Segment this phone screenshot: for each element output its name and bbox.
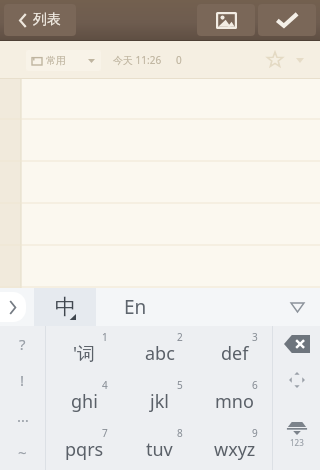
button[interactable]: 6 <box>197 374 272 422</box>
staticText: wxyz <box>214 437 256 462</box>
staticText: 今天 11:26 <box>113 53 162 67</box>
staticText: 7 <box>102 426 108 440</box>
button[interactable]: 2 <box>122 326 197 374</box>
staticText: tuv <box>146 437 173 462</box>
staticText: 列表 <box>33 11 61 29</box>
button[interactable]: 5 <box>122 374 197 422</box>
button[interactable]: ~ <box>0 434 45 470</box>
button[interactable]: 常用 <box>26 50 101 71</box>
button[interactable]: Insert image <box>197 4 255 36</box>
button[interactable]: … <box>0 398 45 434</box>
staticText: '词 <box>73 341 96 366</box>
staticText: 1 <box>102 330 108 344</box>
staticText: 2 <box>177 330 183 344</box>
staticText: pqrs <box>65 437 104 462</box>
button[interactable]: Hide candidates <box>282 292 312 322</box>
button[interactable]: More options <box>290 50 310 70</box>
button[interactable]: Done <box>258 4 316 36</box>
staticText: 123 <box>290 437 304 448</box>
button[interactable]: 1 <box>46 326 122 374</box>
staticText: 3 <box>252 330 258 344</box>
staticText: 常用 <box>46 54 66 67</box>
button[interactable]: En <box>96 288 282 326</box>
staticText: 中 <box>55 294 76 320</box>
staticText: ~ <box>18 442 27 462</box>
button[interactable]: 4 <box>46 374 122 422</box>
staticText: 5 <box>177 378 183 392</box>
staticText: ? <box>19 334 26 354</box>
button[interactable]: Hide keyboard <box>273 398 320 470</box>
button[interactable]: Backspace <box>273 326 320 362</box>
staticText: 8 <box>177 426 183 440</box>
staticText: ! <box>20 370 25 390</box>
staticText: ghi <box>71 389 98 414</box>
staticText: jkl <box>150 389 169 414</box>
staticText: En <box>124 294 147 320</box>
button[interactable]: Favorite <box>262 47 288 73</box>
button[interactable]: Move cursor <box>273 362 320 398</box>
button[interactable]: 中 <box>34 288 96 326</box>
staticText: mno <box>215 389 254 414</box>
button[interactable]: 列表 <box>4 4 76 36</box>
staticText: … <box>17 406 29 426</box>
staticText: def <box>221 341 249 366</box>
button[interactable]: Expand <box>0 292 26 322</box>
button[interactable]: 9 <box>197 422 272 470</box>
button[interactable]: 3 <box>197 326 272 374</box>
button[interactable]: 8 <box>122 422 197 470</box>
button[interactable]: ? <box>0 326 45 362</box>
staticText: abc <box>145 341 175 366</box>
button[interactable]: ! <box>0 362 45 398</box>
staticText: 4 <box>102 378 108 392</box>
staticText: 9 <box>252 426 258 440</box>
staticText: 0 <box>176 53 182 67</box>
button[interactable] <box>0 79 320 288</box>
button[interactable]: 7 <box>46 422 122 470</box>
staticText: 6 <box>252 378 258 392</box>
